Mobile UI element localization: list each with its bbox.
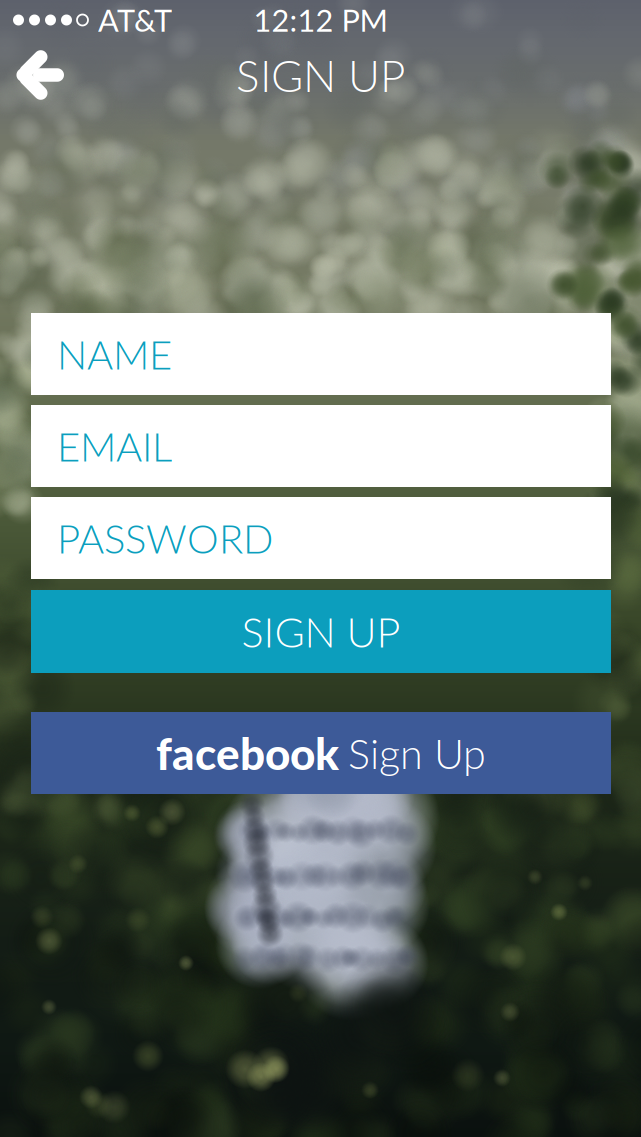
staticText: Sign Up — [348, 728, 486, 778]
staticText: SIGN UP — [241, 607, 400, 656]
staticText: EMAIL — [57, 422, 172, 470]
button[interactable]: Back — [0, 40, 84, 110]
staticText: PASSWORD — [57, 514, 273, 562]
button[interactable]: PASSWORD — [31, 497, 611, 579]
button[interactable]: EMAIL — [31, 405, 611, 487]
button[interactable]: NAME — [31, 313, 611, 395]
button[interactable]: facebook — [31, 712, 611, 794]
button[interactable]: SIGN UP — [31, 590, 611, 673]
staticText: 12:12 PM — [253, 2, 387, 38]
staticText: SIGN UP — [236, 49, 405, 101]
staticText: NAME — [57, 330, 172, 378]
staticText: AT&T — [98, 2, 172, 38]
staticText: facebook — [156, 727, 339, 779]
